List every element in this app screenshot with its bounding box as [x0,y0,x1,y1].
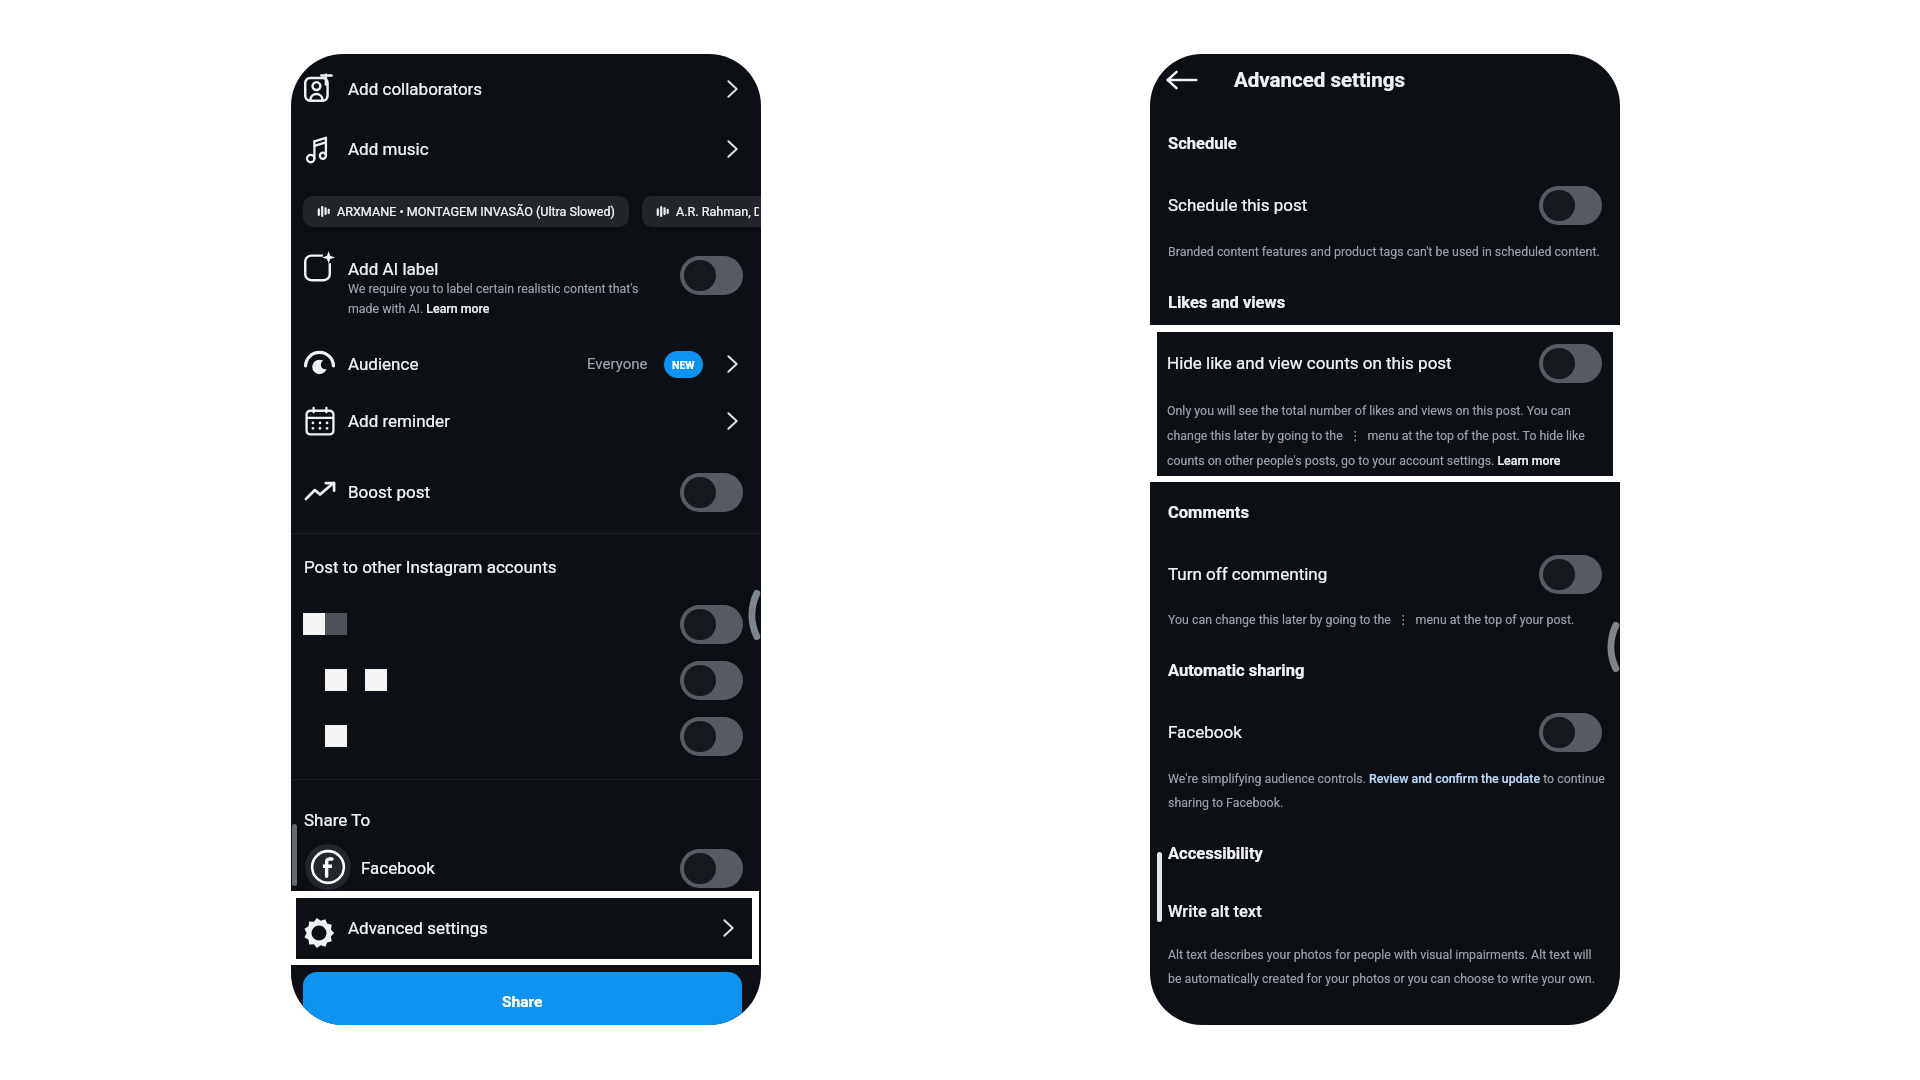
staticText: Turn off commenting [1168,564,1328,584]
staticText: You can change this later by going to th… [1168,612,1575,627]
button[interactable]: Share [303,972,742,1025]
staticText: Everyone [587,355,648,373]
button[interactable]: Turn off commenting, off [1539,555,1602,594]
button[interactable]: Share to Facebook [291,841,761,895]
button[interactable]: Boost post [291,464,761,518]
staticText: Hide like and view counts on this post [1167,353,1452,373]
button[interactable]: Schedule this post [1150,180,1620,232]
button[interactable]: Add collaborators [291,62,761,116]
staticText: counts on other people's posts, go to yo… [1167,453,1561,468]
button[interactable]: Post to account 2, off [680,661,743,700]
staticText: Facebook [361,858,435,878]
button[interactable]: Schedule this post, off [1539,186,1602,225]
staticText: Comments [1168,503,1249,522]
staticText: Schedule [1168,134,1237,153]
staticText: We require you to label certain realisti… [348,281,639,296]
button[interactable]: Add reminder [291,394,761,448]
staticText: NEW [672,359,695,371]
staticText: Boost post [348,482,431,502]
staticText: change this later by going to the ⋮ menu… [1167,428,1585,443]
button[interactable]: ARXMANE • MONTAGEM INVASÃO (Ultra Slowed… [303,196,629,227]
button[interactable]: Post to account 1 [291,598,761,650]
staticText: Alt text describes your photos for peopl… [1168,947,1592,962]
staticText: A.R. Rahman, Dhanush, Shre [676,204,759,219]
staticText: Accessibility [1168,844,1263,863]
button[interactable]: Add AI label [291,244,761,326]
button[interactable]: Hide like and view counts on this post [1157,338,1613,390]
staticText: Add music [348,139,429,159]
staticText: Branded content features and product tag… [1168,244,1600,259]
staticText: Schedule this post [1168,195,1308,215]
staticText: Add reminder [348,411,450,431]
button[interactable]: Boost post, off [680,473,743,512]
button[interactable]: Facebook automatic sharing, off [1539,713,1602,752]
staticText: be automatically created for your photos… [1168,971,1595,986]
staticText: Likes and views [1168,293,1286,312]
staticText: Post to other Instagram accounts [304,557,557,577]
staticText: We're simplifying audience controls. Rev… [1168,771,1605,786]
button[interactable]: Add music [291,122,761,176]
button[interactable]: Share to Facebook, off [680,849,743,888]
staticText: Share To [304,810,371,830]
button[interactable]: Write alt text [1150,887,1620,935]
staticText: Share [502,993,543,1011]
button[interactable]: Post to account 1, off [680,605,743,644]
button[interactable]: Post to account 3, off [680,717,743,756]
staticText: Automatic sharing [1168,661,1305,680]
button[interactable]: A.R. Rahman, Dhanush, Shre [642,196,761,227]
staticText: Write alt text [1168,902,1262,921]
staticText: Advanced settings [1234,68,1406,92]
staticText: sharing to Facebook. [1168,795,1284,810]
button[interactable]: Post to account 3 [291,710,761,762]
staticText: Add collaborators [348,79,483,99]
staticText: Advanced settings [348,918,488,938]
button[interactable]: NEW [664,351,703,378]
button[interactable]: Post to account 2 [291,654,761,706]
button[interactable]: Add AI label, off [680,256,743,295]
staticText: made with AI. Learn more [348,301,490,316]
staticText: Facebook [1168,722,1242,742]
staticText: ARXMANE • MONTAGEM INVASÃO (Ultra Slowed… [337,204,615,219]
button[interactable]: Facebook automatic sharing [1150,707,1620,759]
button[interactable]: Audience, Everyone [291,337,761,391]
button[interactable]: Advanced settings [296,898,752,959]
staticText: Audience [348,354,419,374]
button[interactable]: Hide like and view counts, off [1539,344,1602,383]
button[interactable]: Turn off commenting [1150,549,1620,601]
staticText: Only you will see the total number of li… [1167,403,1571,418]
button[interactable]: Back [1165,63,1199,97]
staticText: Add AI label [348,259,439,279]
